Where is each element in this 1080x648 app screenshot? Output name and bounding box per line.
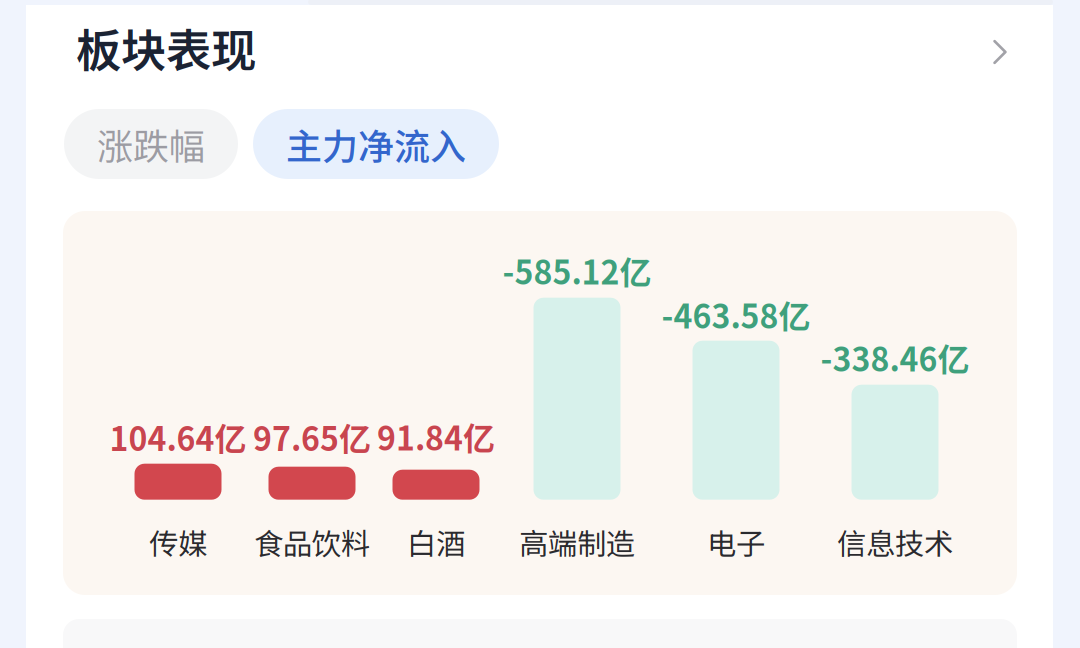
staticText: 91.84亿 (377, 413, 495, 460)
staticText: 食品饮料 (254, 521, 370, 563)
staticText: -585.12亿 (502, 247, 651, 294)
staticText: 电子 (707, 521, 765, 563)
staticText: 主力净流入 (286, 118, 466, 170)
staticText: 97.65亿 (253, 414, 371, 460)
staticText: -338.46亿 (820, 334, 969, 381)
button[interactable]: 涨跌幅 (64, 109, 238, 179)
staticText: 涨跌幅 (97, 118, 205, 170)
staticText: 白酒 (407, 521, 465, 563)
staticText: 板块表现 (76, 15, 256, 80)
staticText: 传媒 (149, 521, 207, 563)
staticText: 信息技术 (837, 521, 953, 563)
button[interactable]: 主力净流入 (253, 109, 499, 179)
staticText: 104.64亿 (109, 414, 246, 460)
staticText: -463.58亿 (661, 291, 810, 338)
staticText: 高端制造 (519, 521, 635, 563)
button[interactable]: 查看板块表现详情 (969, 21, 1031, 83)
